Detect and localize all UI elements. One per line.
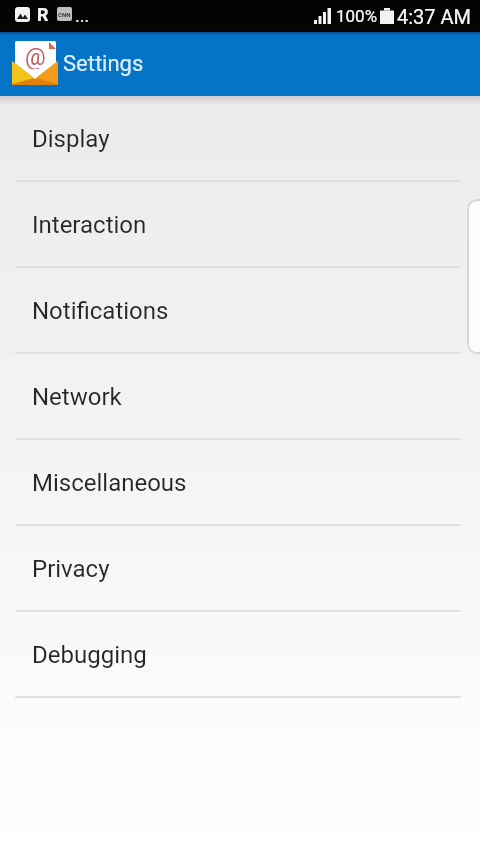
button[interactable]: Debugging [0, 612, 480, 698]
staticText: Display [32, 125, 110, 153]
button[interactable]: Miscellaneous [0, 440, 480, 526]
staticText: Network [32, 383, 122, 411]
staticText: R [37, 4, 49, 25]
staticText: Interaction [32, 211, 147, 239]
button[interactable]: Display [0, 96, 480, 182]
staticText: Notifications [32, 297, 169, 325]
staticText: Debugging [32, 641, 147, 669]
staticText: Privacy [32, 555, 110, 583]
staticText: ... [75, 5, 90, 26]
staticText: @ [25, 44, 46, 69]
staticText: Miscellaneous [32, 469, 187, 497]
staticText: Settings [63, 51, 144, 77]
staticText: CNN [58, 11, 71, 18]
staticText: 100% [336, 6, 378, 26]
button[interactable]: Interaction [0, 182, 480, 268]
button[interactable]: Privacy [0, 526, 480, 612]
button[interactable]: Notifications [0, 268, 480, 354]
staticText: 4:37 AM [397, 5, 472, 28]
button[interactable]: Network [0, 354, 480, 440]
